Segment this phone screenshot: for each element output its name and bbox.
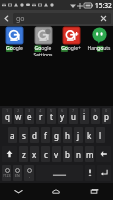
staticText: u	[71, 111, 76, 122]
button[interactable]: 8	[80, 108, 89, 124]
staticText: y	[60, 111, 65, 122]
staticText: go	[16, 14, 25, 24]
staticText: v	[54, 149, 59, 160]
button[interactable]: m	[85, 146, 94, 162]
staticText: w	[15, 111, 22, 122]
staticText: k	[87, 130, 92, 141]
button[interactable]: 7	[69, 108, 78, 124]
staticText: x	[32, 149, 37, 160]
button[interactable]: c	[41, 146, 50, 162]
button[interactable]: g	[52, 127, 61, 143]
button[interactable]: f	[41, 127, 50, 143]
button[interactable]: Backspace	[96, 146, 111, 162]
button[interactable]: Google Settings	[29, 27, 57, 56]
button[interactable]: Hide keyboard	[0, 183, 37, 200]
button[interactable]: Back	[0, 10, 13, 26]
staticText: EN	[15, 173, 20, 178]
staticText: g	[54, 130, 59, 141]
button[interactable]: 5	[47, 108, 56, 124]
staticText: c	[44, 149, 48, 160]
button[interactable]: 0	[102, 108, 111, 124]
staticText: m	[86, 149, 94, 160]
button[interactable]: Clear	[98, 13, 109, 24]
staticText: 9	[94, 108, 97, 113]
staticText: Google	[1, 45, 28, 52]
button[interactable]: a	[8, 127, 17, 143]
staticText: 4	[39, 108, 42, 113]
button[interactable]: 4	[36, 108, 45, 124]
button[interactable]: ,	[24, 165, 34, 181]
button[interactable]: 3	[25, 108, 34, 124]
button[interactable]: go	[13, 13, 111, 24]
button[interactable]: Voice input	[85, 165, 95, 181]
button[interactable]: Shift	[2, 146, 17, 162]
button[interactable]: v	[52, 146, 61, 162]
staticText: 5	[50, 108, 53, 113]
button[interactable]: 9	[91, 108, 100, 124]
button[interactable]: Recent apps	[75, 183, 113, 200]
staticText: 1	[6, 108, 9, 113]
button[interactable]: Enter	[97, 165, 111, 181]
staticText: t	[50, 111, 53, 122]
button[interactable]: Space	[36, 165, 83, 181]
staticText: Google Settings	[30, 45, 56, 56]
button[interactable]: 2	[14, 108, 23, 124]
button[interactable]: Google	[0, 27, 29, 56]
staticText: a	[10, 130, 15, 141]
button[interactable]: s	[19, 127, 28, 143]
staticText: l	[99, 130, 102, 141]
staticText: d	[32, 130, 37, 141]
button[interactable]: b	[63, 146, 72, 162]
staticText: b	[65, 149, 70, 160]
button[interactable]: 6	[58, 108, 67, 124]
button[interactable]: d	[30, 127, 39, 143]
staticText: 0	[105, 108, 108, 113]
staticText: 15:32	[95, 1, 112, 10]
staticText: z	[22, 149, 26, 160]
button[interactable]: z	[19, 146, 28, 162]
staticText: e	[27, 111, 32, 122]
button[interactable]: 1	[2, 108, 12, 124]
button[interactable]: Hangouts	[85, 27, 113, 56]
button[interactable]: Home	[37, 183, 75, 200]
staticText: Google+	[58, 45, 84, 52]
button[interactable]: k	[85, 127, 94, 143]
staticText: f	[44, 130, 47, 141]
button[interactable]: n	[74, 146, 83, 162]
button[interactable]: x	[30, 146, 39, 162]
staticText: ?123	[3, 173, 11, 178]
staticText: h	[65, 130, 70, 141]
button[interactable]: l	[96, 127, 105, 143]
staticText: 7	[72, 108, 75, 113]
staticText: o	[93, 111, 98, 122]
staticText: 8	[83, 108, 86, 113]
staticText: ,	[29, 173, 30, 178]
button[interactable]: h	[63, 127, 72, 143]
button[interactable]: j	[74, 127, 83, 143]
button[interactable]: ?123	[2, 165, 11, 181]
button[interactable]: Google+	[57, 27, 85, 56]
staticText: Hangouts	[86, 45, 112, 52]
staticText: 2	[17, 108, 20, 113]
staticText: n	[76, 149, 81, 160]
staticText: 6	[61, 108, 64, 113]
staticText: i	[83, 111, 86, 122]
button[interactable]: EN	[13, 165, 22, 181]
staticText: q	[5, 111, 10, 122]
staticText: 3	[28, 108, 31, 113]
staticText: j	[77, 130, 80, 141]
staticText: s	[22, 130, 26, 141]
staticText: p	[104, 111, 109, 122]
staticText: r	[39, 111, 43, 122]
